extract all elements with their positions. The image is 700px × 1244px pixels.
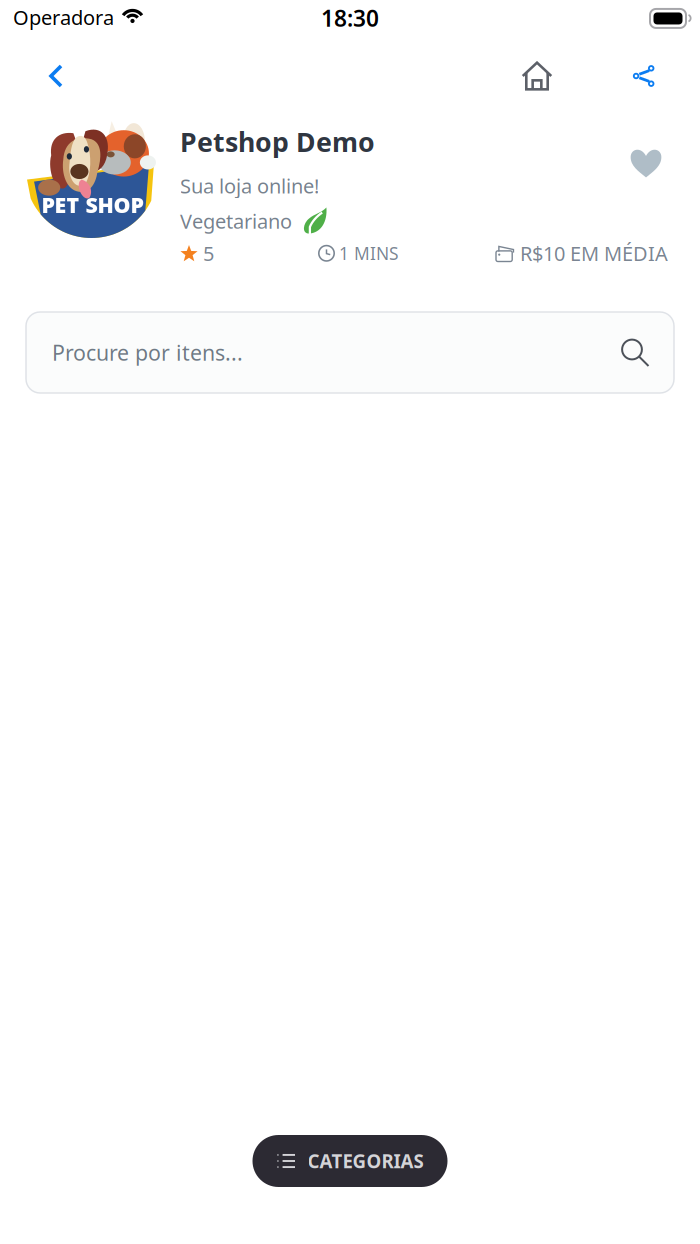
staticText: Operadora [13,4,114,30]
staticText: 5 [203,240,214,267]
staticText: R$10 EM MÉDIA [520,240,668,267]
staticText: Vegetariano [180,208,292,234]
staticText: 18:30 [321,3,379,33]
button[interactable]: Procure por itens... [26,312,674,393]
staticText: PET SHOP [41,191,143,219]
staticText: CATEGORIAS [307,1149,423,1173]
button[interactable]: Favorite [624,141,668,185]
staticText: Sua loja online! [180,172,319,199]
staticText: 1 MINS [339,242,399,265]
button[interactable]: Home [515,54,559,98]
staticText: Procure por itens... [52,338,243,367]
staticText: Petshop Demo [180,124,375,159]
button[interactable]: Back [34,54,78,98]
button[interactable]: CATEGORIAS [252,1135,447,1187]
button[interactable]: Share [622,54,666,98]
